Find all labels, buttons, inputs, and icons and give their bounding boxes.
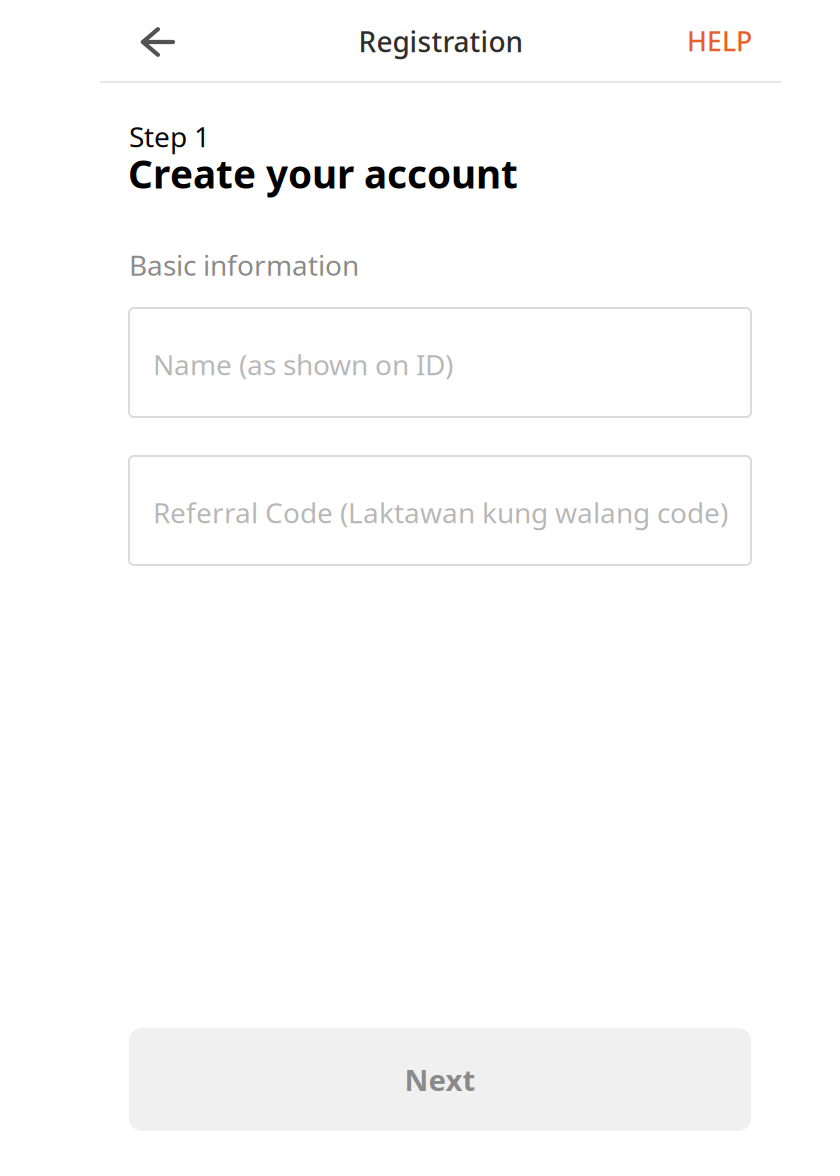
staticText: Registration	[358, 23, 523, 60]
staticText: Step 1	[129, 118, 210, 155]
button[interactable]: HELP	[672, 8, 767, 74]
staticText: Name (as shown on ID)	[153, 346, 453, 383]
staticText: Referral Code (Laktawan kung walang code…	[153, 494, 728, 531]
staticText: HELP	[687, 23, 752, 59]
button[interactable]: Referral Code (Laktawan kung walang code…	[129, 456, 751, 565]
staticText: Next	[404, 1060, 475, 1099]
button[interactable]: Name (as shown on ID)	[129, 308, 751, 417]
staticText: Basic information	[129, 246, 359, 284]
button[interactable]: Back	[115, 9, 199, 75]
button[interactable]: Next	[129, 1028, 751, 1131]
staticText: Create your account	[128, 148, 518, 199]
